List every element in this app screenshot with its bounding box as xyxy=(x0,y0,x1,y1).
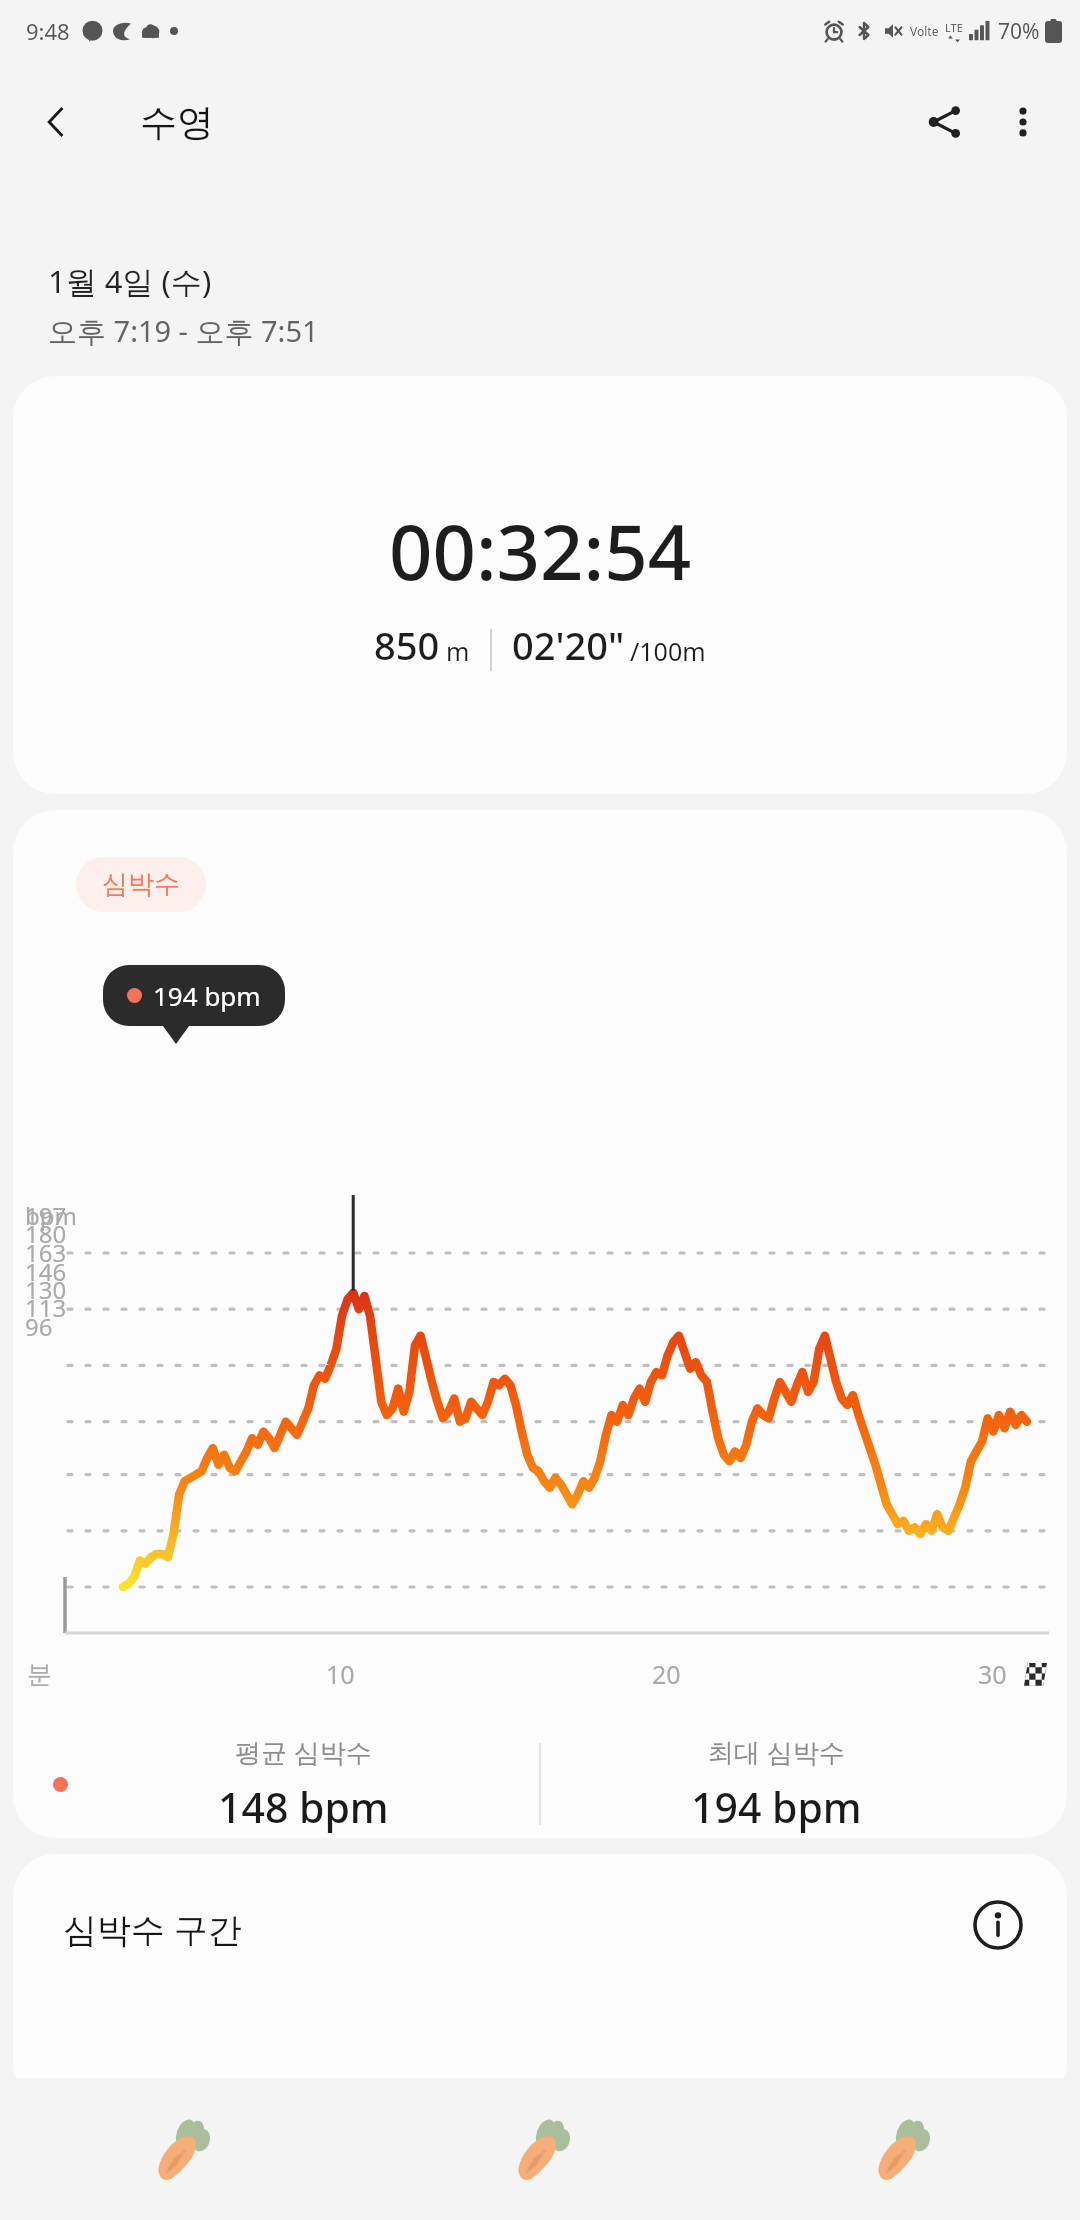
staticText: bpm xyxy=(25,1199,77,1232)
staticText: Volte xyxy=(910,23,939,39)
button[interactable]: 00:32:54 xyxy=(13,376,1067,794)
button[interactable]: Share xyxy=(906,83,984,161)
button[interactable]: 심박수 xyxy=(76,857,206,912)
staticText: 194 bpm xyxy=(153,978,261,1013)
staticText: 148 bpm xyxy=(218,1779,389,1835)
staticText: LTE xyxy=(945,20,963,35)
staticText: 수영 xyxy=(140,99,214,146)
staticText: 1월 4일 (수) xyxy=(48,260,212,302)
staticText: 146 xyxy=(25,1255,67,1288)
button[interactable]: Recents xyxy=(0,2078,360,2220)
button[interactable]: 평균 심박수 xyxy=(68,1734,539,1835)
staticText: 분 xyxy=(27,1659,52,1690)
button[interactable]: 최대 심박수 xyxy=(541,1734,1012,1835)
staticText: m xyxy=(446,634,470,668)
staticText: 197 xyxy=(25,1199,67,1232)
staticText: 30 xyxy=(978,1657,1007,1691)
staticText: 오후 7:19 - 오후 7:51 xyxy=(48,311,319,351)
button[interactable]: More options xyxy=(984,83,1062,161)
button[interactable]: Back xyxy=(720,2078,1080,2220)
button[interactable]: Info xyxy=(969,1896,1027,1954)
staticText: 130 xyxy=(25,1273,67,1306)
button[interactable]: Home xyxy=(360,2078,720,2220)
staticText: 96 xyxy=(25,1310,53,1343)
staticText: 10 xyxy=(326,1657,355,1691)
staticText: 850 xyxy=(374,619,440,671)
staticText: 심박수 xyxy=(102,868,180,901)
staticText: 163 xyxy=(25,1236,67,1269)
staticText: /100m xyxy=(630,634,706,668)
staticText: 심박수 구간 xyxy=(63,1906,242,1952)
staticText: 194 bpm xyxy=(691,1779,862,1835)
staticText: 180 xyxy=(25,1217,67,1250)
staticText: 최대 심박수 xyxy=(708,1734,845,1770)
button[interactable]: Back xyxy=(22,88,90,156)
staticText: 70% xyxy=(998,17,1040,46)
staticText: 평균 심박수 xyxy=(235,1734,372,1770)
staticText: 02'20" xyxy=(512,619,625,671)
staticText: 00:32:54 xyxy=(389,499,692,603)
staticText: 9:48 xyxy=(26,16,70,46)
staticText: 113 xyxy=(25,1291,67,1324)
button[interactable]: 심박수 구간 xyxy=(13,1854,1067,2104)
staticText: 20 xyxy=(652,1657,681,1691)
